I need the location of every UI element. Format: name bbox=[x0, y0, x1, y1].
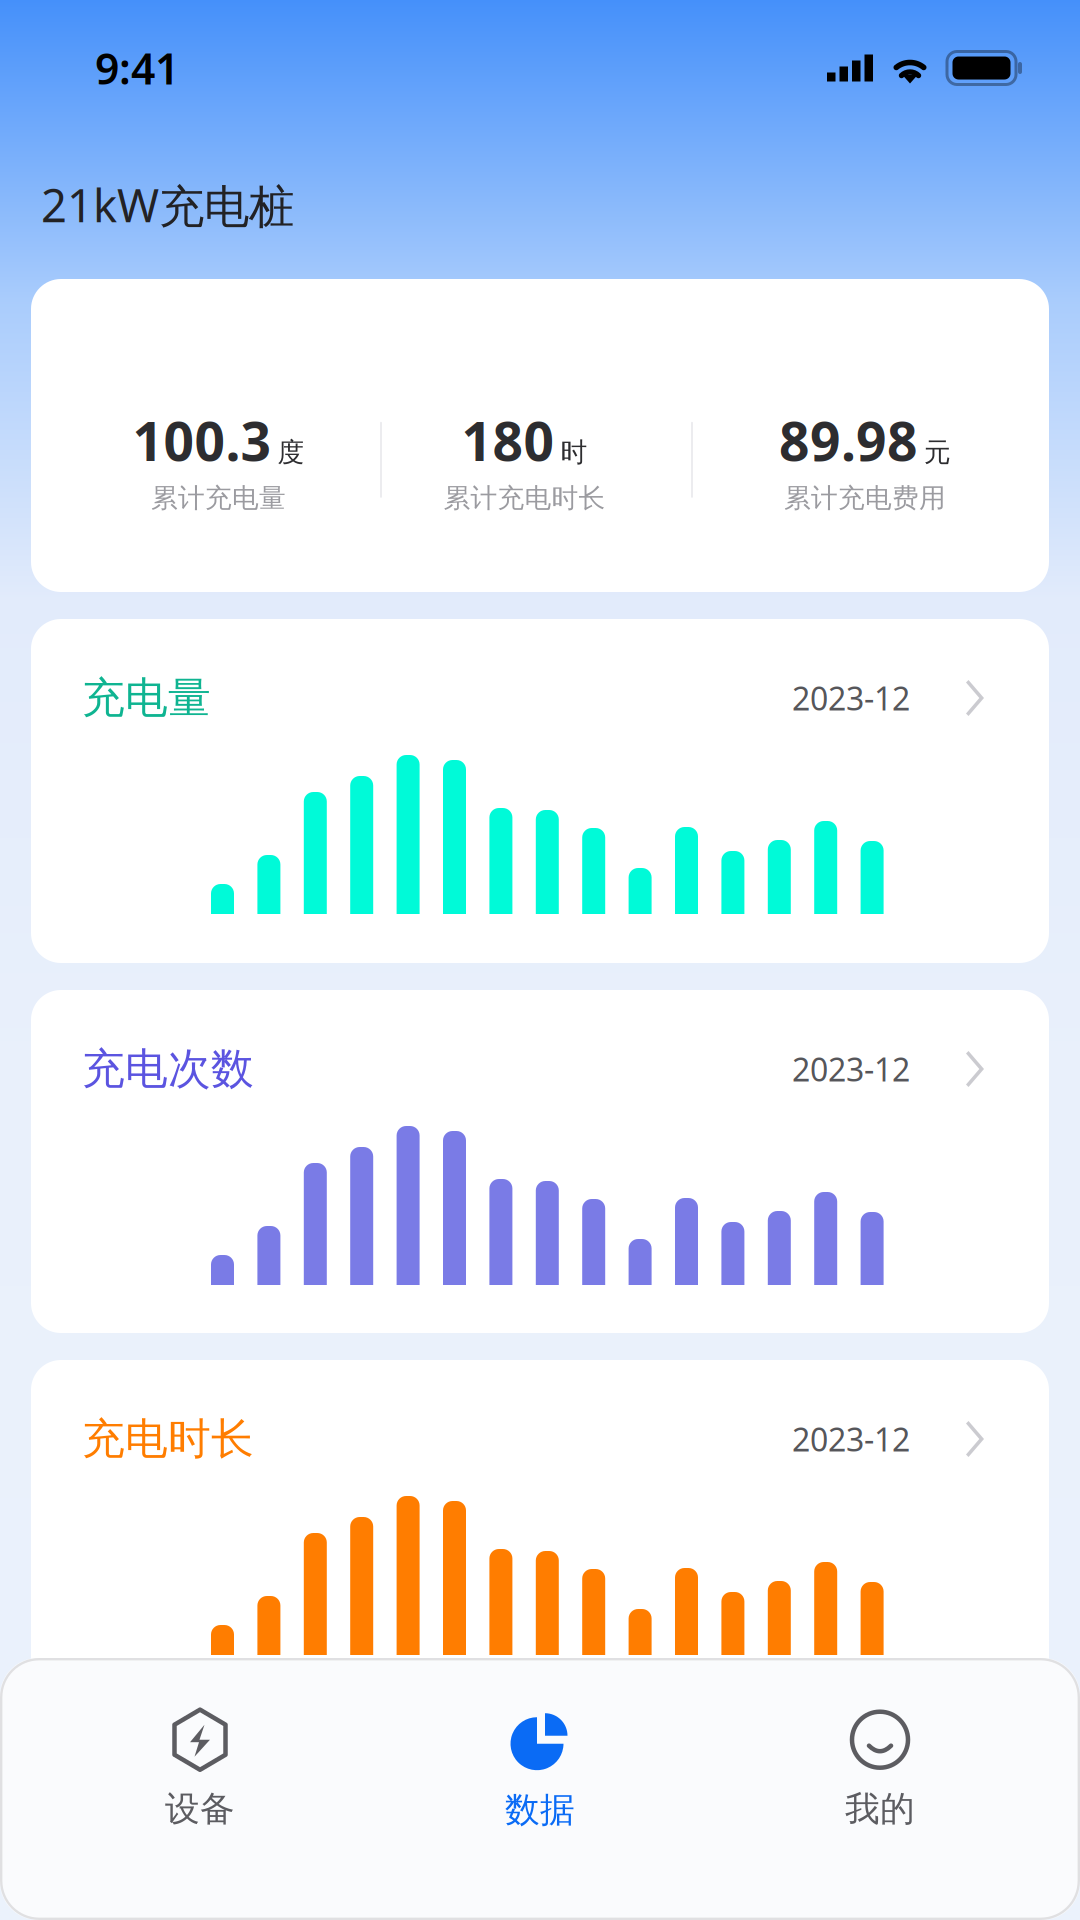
staticText: 21kW充电桩 bbox=[41, 175, 294, 235]
staticText: 我的 bbox=[845, 1788, 915, 1830]
button[interactable]: 充电量 bbox=[31, 619, 1049, 777]
staticText: 2023-12 bbox=[792, 1418, 910, 1460]
staticText: 时 bbox=[560, 436, 587, 469]
staticText: 2023-12 bbox=[792, 677, 910, 719]
staticText: 充电次数 bbox=[82, 1043, 254, 1095]
button[interactable]: 充电次数 bbox=[31, 990, 1049, 1148]
button[interactable]: 设备 bbox=[30, 1696, 370, 1844]
button[interactable]: 数据 bbox=[370, 1696, 710, 1844]
staticText: 89.98 bbox=[779, 405, 918, 476]
staticText: 度 bbox=[277, 436, 304, 469]
staticText: 元 bbox=[924, 436, 951, 469]
button[interactable]: 充电时长 bbox=[31, 1360, 1049, 1518]
staticText: 180 bbox=[461, 405, 554, 476]
staticText: 2023-12 bbox=[792, 1048, 910, 1090]
button[interactable]: 我的 bbox=[710, 1696, 1050, 1844]
staticText: 充电量 bbox=[82, 672, 211, 724]
staticText: 设备 bbox=[165, 1788, 235, 1830]
staticText: 累计充电费用 bbox=[784, 482, 946, 515]
staticText: 数据 bbox=[505, 1789, 575, 1831]
staticText: 9:41 bbox=[95, 40, 179, 96]
staticText: 100.3 bbox=[132, 405, 271, 476]
staticText: 累计充电时长 bbox=[443, 482, 605, 515]
staticText: 充电时长 bbox=[82, 1413, 254, 1465]
staticText: 累计充电量 bbox=[151, 482, 286, 515]
